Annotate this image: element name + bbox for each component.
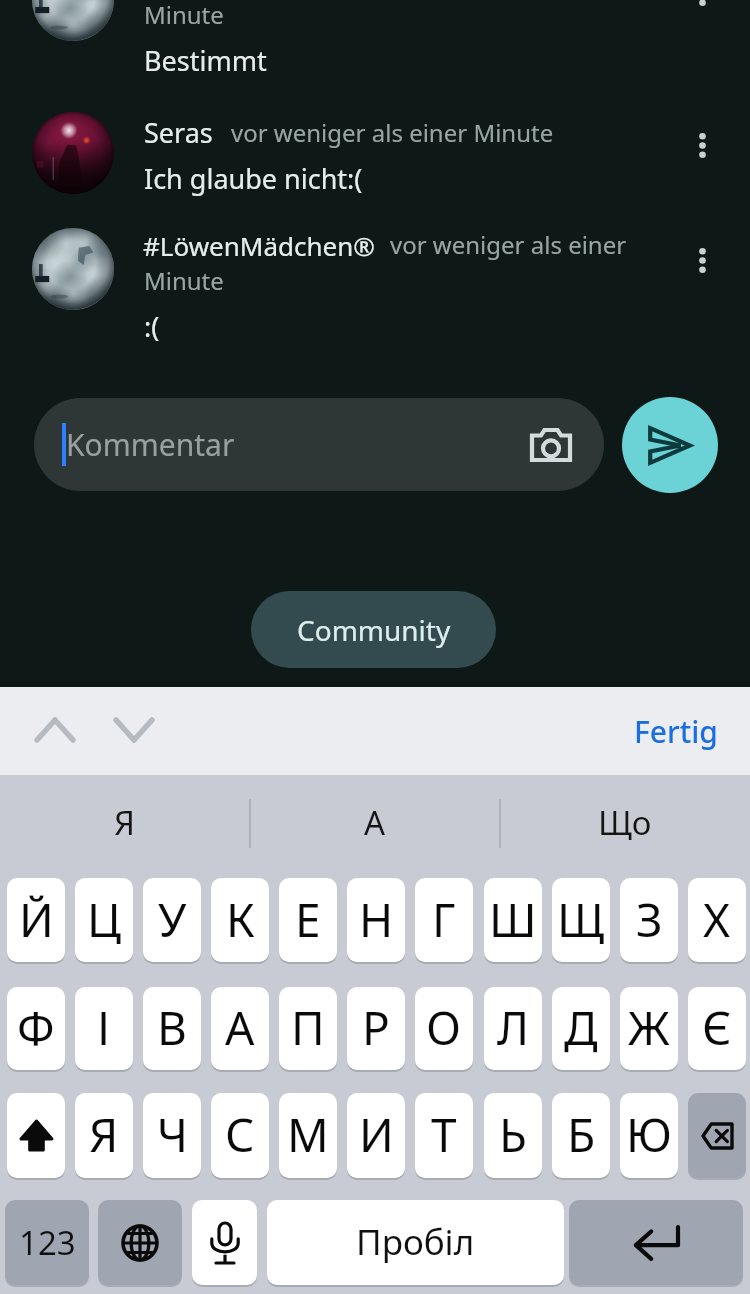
staticText: Х bbox=[703, 888, 731, 951]
button[interactable]: Ь bbox=[484, 1093, 542, 1178]
staticText: Г bbox=[432, 888, 456, 951]
button[interactable]: Ч bbox=[143, 1093, 201, 1178]
staticText: Н bbox=[359, 888, 394, 951]
button[interactable]: Г bbox=[415, 878, 473, 962]
staticText: #LöwenMädchen® bbox=[143, 228, 375, 263]
staticText: Я bbox=[114, 800, 136, 845]
button[interactable] bbox=[32, 228, 114, 310]
button[interactable] bbox=[32, 112, 114, 194]
button[interactable]: Я bbox=[75, 1093, 133, 1178]
staticText: Ю bbox=[626, 1103, 672, 1166]
button[interactable]: И bbox=[347, 1093, 405, 1178]
staticText: Е bbox=[295, 888, 321, 951]
staticText: Щ bbox=[557, 888, 605, 951]
staticText: Т bbox=[431, 1103, 457, 1166]
button[interactable]: Send bbox=[622, 397, 718, 493]
staticText: :( bbox=[144, 308, 160, 345]
button[interactable]: Fertig bbox=[615, 695, 737, 767]
button[interactable]: Previous field bbox=[23, 698, 87, 762]
staticText: Б bbox=[567, 1103, 596, 1166]
button[interactable]: Пробіл bbox=[267, 1200, 564, 1285]
button[interactable]: More options bbox=[679, 0, 725, 16]
button[interactable]: Х bbox=[688, 878, 746, 962]
button[interactable] bbox=[569, 1200, 743, 1285]
button[interactable]: Р bbox=[347, 987, 405, 1070]
button[interactable]: More options bbox=[679, 122, 725, 168]
button[interactable]: Я bbox=[0, 775, 250, 873]
staticText: Д bbox=[564, 996, 598, 1059]
staticText: Ц bbox=[87, 888, 122, 951]
staticText: Ь bbox=[499, 1103, 527, 1166]
staticText: 123 bbox=[19, 1220, 76, 1265]
staticText: Пробіл bbox=[356, 1218, 475, 1266]
staticText: vor weniger als einer bbox=[390, 228, 627, 261]
button[interactable]: О bbox=[415, 987, 473, 1070]
button[interactable]: Kommentar bbox=[34, 398, 604, 491]
staticText: Kommentar bbox=[66, 424, 235, 465]
button[interactable]: Ж bbox=[620, 987, 678, 1070]
button[interactable]: Б bbox=[552, 1093, 610, 1178]
button[interactable] bbox=[98, 1200, 182, 1285]
staticText: Л bbox=[497, 996, 530, 1059]
staticText: У bbox=[158, 888, 187, 951]
button[interactable]: 123 bbox=[5, 1200, 89, 1285]
staticText: М bbox=[287, 1103, 329, 1166]
staticText: Community bbox=[297, 611, 451, 649]
staticText: Fertig bbox=[634, 711, 718, 752]
button[interactable]: More options bbox=[679, 237, 725, 283]
staticText: Ich glaube nicht:( bbox=[144, 160, 363, 197]
button[interactable]: З bbox=[620, 878, 678, 962]
staticText: К bbox=[226, 888, 255, 951]
button[interactable]: А bbox=[211, 987, 269, 1070]
button[interactable]: У bbox=[143, 878, 201, 962]
button[interactable]: С bbox=[211, 1093, 269, 1178]
staticText: Seras bbox=[144, 114, 213, 151]
button[interactable] bbox=[7, 1093, 65, 1178]
staticText: Minute bbox=[144, 264, 224, 297]
staticText: И bbox=[359, 1103, 394, 1166]
staticText: А bbox=[364, 800, 386, 845]
staticText: Bestimmt bbox=[144, 42, 267, 79]
button[interactable]: М bbox=[279, 1093, 337, 1178]
staticText: Що bbox=[598, 800, 652, 845]
button[interactable]: Next field bbox=[102, 698, 166, 762]
button[interactable]: Community bbox=[251, 591, 496, 668]
staticText: А bbox=[225, 996, 255, 1059]
staticText: Ф bbox=[17, 996, 55, 1059]
staticText: Ч bbox=[157, 1103, 188, 1166]
button[interactable]: Ю bbox=[620, 1093, 678, 1178]
staticText: Й bbox=[19, 888, 54, 951]
button[interactable]: Є bbox=[688, 987, 746, 1070]
staticText: І bbox=[97, 996, 111, 1059]
button[interactable]: Ц bbox=[75, 878, 133, 962]
button[interactable]: А bbox=[250, 775, 500, 873]
button[interactable]: П bbox=[279, 987, 337, 1070]
button[interactable]: Camera bbox=[528, 422, 574, 468]
button[interactable]: Е bbox=[279, 878, 337, 962]
button[interactable]: Ф bbox=[7, 987, 65, 1070]
staticText: С bbox=[225, 1103, 255, 1166]
staticText: П bbox=[291, 996, 325, 1059]
staticText: Я bbox=[89, 1103, 119, 1166]
button[interactable]: Ш bbox=[484, 878, 542, 962]
staticText: Ж bbox=[628, 996, 670, 1059]
button[interactable]: Н bbox=[347, 878, 405, 962]
button[interactable] bbox=[688, 1093, 746, 1178]
staticText: Р bbox=[362, 996, 390, 1059]
button[interactable]: Й bbox=[7, 878, 65, 962]
button[interactable] bbox=[32, 0, 114, 41]
button[interactable] bbox=[192, 1200, 257, 1285]
staticText: Є bbox=[702, 996, 732, 1059]
button[interactable]: К bbox=[211, 878, 269, 962]
button[interactable]: І bbox=[75, 987, 133, 1070]
staticText: О bbox=[426, 996, 462, 1059]
staticText: З bbox=[636, 888, 663, 951]
staticText: Ш bbox=[489, 888, 537, 951]
button[interactable]: Т bbox=[415, 1093, 473, 1178]
button[interactable]: Д bbox=[552, 987, 610, 1070]
button[interactable]: В bbox=[143, 987, 201, 1070]
button[interactable]: Щ bbox=[552, 878, 610, 962]
button[interactable]: Що bbox=[500, 775, 750, 873]
button[interactable]: Л bbox=[484, 987, 542, 1070]
staticText: В bbox=[157, 996, 187, 1059]
